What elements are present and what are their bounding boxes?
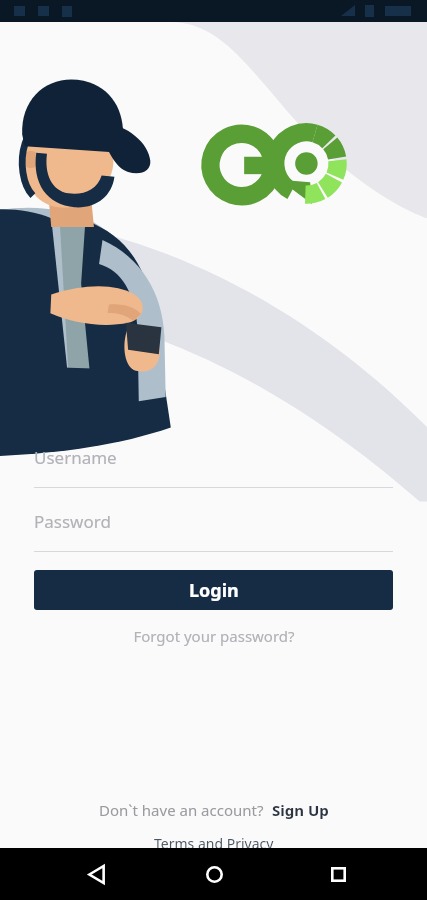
button[interactable]: Password (34, 510, 393, 552)
staticText: Terms and Privacy (154, 834, 274, 853)
staticText: Login (189, 578, 239, 603)
button[interactable]: Forgot your password? (34, 626, 393, 646)
button[interactable]: Home (190, 850, 238, 898)
button[interactable]: Terms and Privacy (154, 834, 274, 853)
button[interactable]: Recent apps (314, 850, 362, 898)
staticText: Forgot your password? (133, 626, 295, 646)
staticText: Password (34, 510, 111, 533)
staticText: Sign Up (272, 800, 329, 820)
button[interactable]: Username (34, 446, 393, 488)
button[interactable]: Back (72, 850, 120, 898)
staticText: Don`t have an account? (99, 800, 264, 820)
button[interactable]: Login (34, 570, 393, 610)
button[interactable]: Sign Up (272, 800, 329, 820)
staticText: Username (34, 446, 117, 469)
